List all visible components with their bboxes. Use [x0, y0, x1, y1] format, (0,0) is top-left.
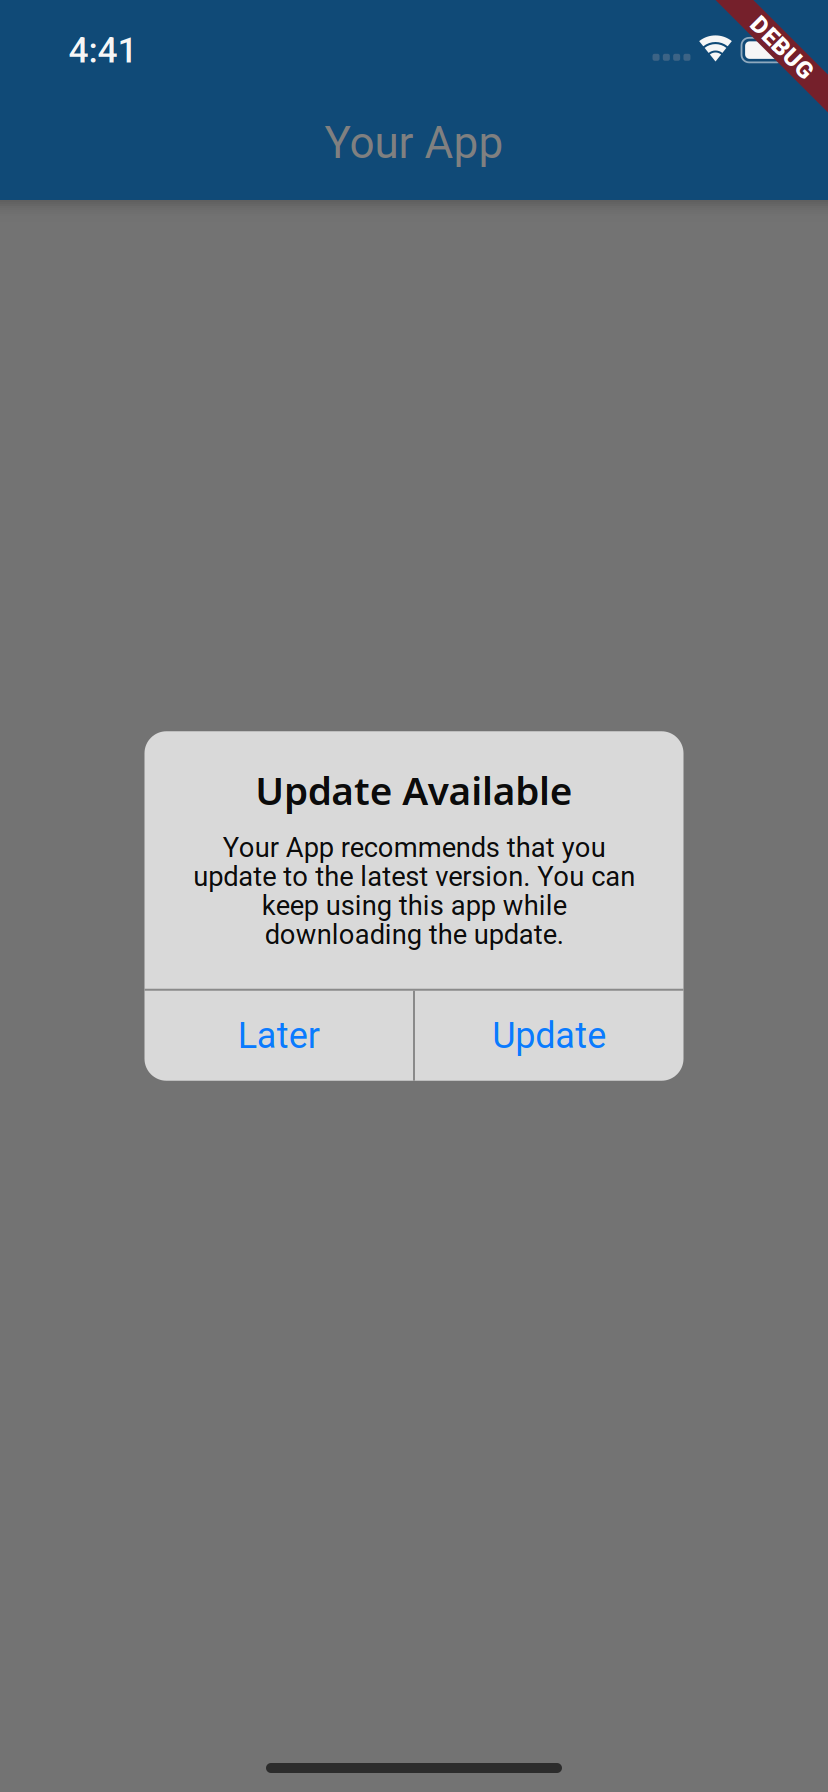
- staticText: 4:41: [68, 30, 137, 71]
- button[interactable]: Later: [144, 991, 413, 1081]
- staticText: Update: [492, 1015, 606, 1057]
- button[interactable]: Update: [415, 991, 683, 1081]
- staticText: DEBUG: [743, 33, 821, 61]
- staticText: Your App recommends that you update to t…: [193, 832, 635, 951]
- staticText: Update Available: [255, 764, 573, 816]
- staticText: Later: [238, 1015, 320, 1057]
- staticText: Your App: [324, 117, 503, 169]
